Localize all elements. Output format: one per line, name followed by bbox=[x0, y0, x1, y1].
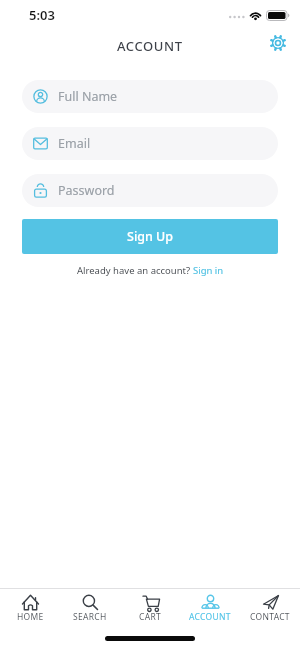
staticText: 5:03 bbox=[29, 6, 55, 24]
button[interactable]: ACCOUNT bbox=[180, 589, 240, 623]
staticText: Full Name bbox=[58, 88, 118, 105]
button[interactable]: Sign in bbox=[193, 264, 224, 277]
button[interactable]: CONTACT bbox=[240, 589, 300, 623]
button[interactable]: Sign Up bbox=[22, 219, 278, 254]
button[interactable] bbox=[269, 34, 287, 52]
staticText: CART bbox=[139, 611, 162, 623]
button[interactable]: Email bbox=[22, 127, 278, 160]
staticText: Sign Up bbox=[127, 228, 174, 245]
button[interactable]: Full Name bbox=[22, 80, 278, 113]
staticText: ACCOUNT bbox=[117, 37, 183, 55]
staticText: HOME bbox=[17, 611, 44, 623]
button[interactable]: HOME bbox=[0, 589, 60, 623]
staticText: Password bbox=[58, 182, 115, 199]
staticText: Sign in bbox=[193, 264, 224, 277]
button[interactable]: CART bbox=[120, 589, 180, 623]
staticText: Already have an account? bbox=[77, 264, 193, 277]
staticText: Email bbox=[58, 135, 91, 152]
button[interactable]: SEARCH bbox=[60, 589, 120, 623]
staticText: CONTACT bbox=[250, 611, 290, 623]
button[interactable]: Password bbox=[22, 174, 278, 207]
staticText: ACCOUNT bbox=[189, 611, 231, 623]
staticText: SEARCH bbox=[73, 611, 107, 623]
